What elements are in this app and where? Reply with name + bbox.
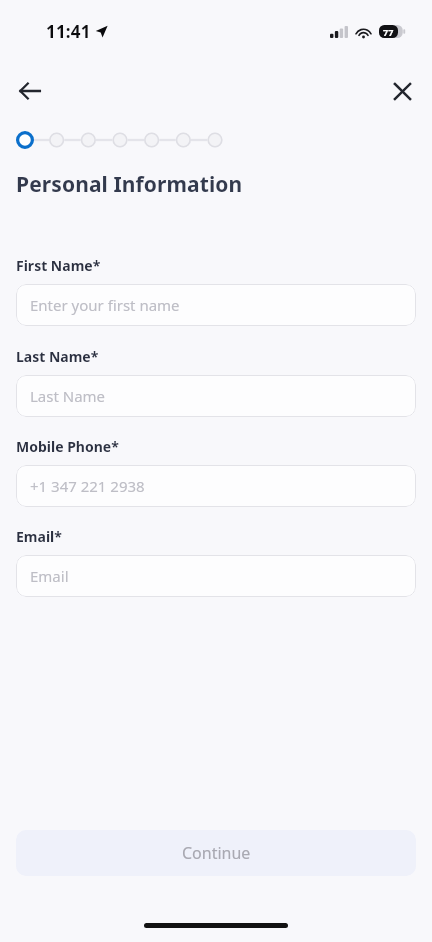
button[interactable]: +1 347 221 2938 xyxy=(16,465,416,507)
button[interactable]: Email xyxy=(16,555,416,597)
staticText: +1 347 221 2938 xyxy=(30,476,145,496)
button[interactable]: Close xyxy=(380,69,424,113)
staticText: Continue xyxy=(182,842,251,864)
button[interactable]: Back xyxy=(8,69,52,113)
button[interactable]: Continue xyxy=(16,830,416,876)
staticText: Personal Information xyxy=(16,170,243,199)
button[interactable]: Last Name xyxy=(16,375,416,417)
staticText: Last Name xyxy=(30,386,106,406)
staticText: Mobile Phone* xyxy=(16,437,119,456)
staticText: 11:41 xyxy=(46,20,91,43)
staticText: Email xyxy=(30,566,69,586)
staticText: 77 xyxy=(383,26,394,38)
staticText: Email* xyxy=(16,527,62,546)
staticText: Enter your first name xyxy=(30,295,180,315)
staticText: First Name* xyxy=(16,256,101,275)
button[interactable]: Enter your first name xyxy=(16,284,416,326)
staticText: Last Name* xyxy=(16,347,99,366)
